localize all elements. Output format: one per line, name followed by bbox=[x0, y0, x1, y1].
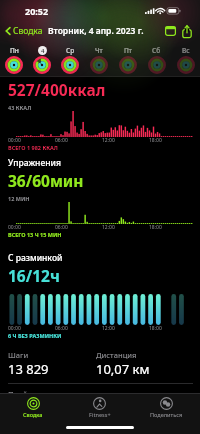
staticText: ВСЕГО 13 Ч 15 МИН bbox=[8, 231, 62, 238]
staticText: 16/12ч bbox=[8, 265, 60, 286]
staticText: Пт bbox=[124, 46, 132, 55]
staticText: Сводка bbox=[13, 25, 43, 37]
staticText: Перемещение bbox=[8, 66, 69, 78]
staticText: Шаги bbox=[8, 350, 29, 360]
button[interactable]: Сб bbox=[142, 40, 171, 74]
staticText: Fitness+ bbox=[89, 411, 111, 418]
button[interactable]: Ср bbox=[56, 40, 84, 74]
button[interactable]: Сводка bbox=[3, 23, 45, 39]
staticText: Вс bbox=[182, 46, 190, 55]
staticText: Поделиться bbox=[150, 411, 183, 418]
staticText: 12:00 bbox=[102, 224, 115, 231]
button[interactable]: Чт bbox=[84, 40, 113, 74]
staticText: Вторник, 4 апр. 2023 г. bbox=[48, 25, 144, 37]
staticText: Чт bbox=[95, 46, 103, 55]
staticText: 12:00 bbox=[102, 137, 115, 144]
button[interactable]: Пт bbox=[113, 40, 142, 74]
staticText: Пройдено пролетов bbox=[8, 389, 83, 399]
staticText: 4 bbox=[41, 47, 45, 55]
button[interactable]: 4 bbox=[28, 40, 56, 74]
button[interactable]: Пн bbox=[0, 40, 28, 74]
staticText: 06:00 bbox=[55, 224, 68, 231]
staticText: 00:00 bbox=[8, 137, 21, 144]
staticText: Дистанция bbox=[96, 350, 137, 360]
staticText: 18:00 bbox=[149, 325, 162, 332]
staticText: 6 Ч БЕЗ РАЗМИНКИ bbox=[8, 332, 62, 339]
staticText: 12 МИН bbox=[8, 195, 30, 202]
button[interactable]: Вс bbox=[171, 40, 200, 74]
staticText: Пн bbox=[10, 46, 19, 55]
staticText: 18:00 bbox=[149, 224, 162, 231]
staticText: С разминкой bbox=[8, 252, 63, 264]
staticText: 00:00 bbox=[8, 224, 21, 231]
staticText: 527/400ккал bbox=[8, 79, 106, 100]
staticText: 06:00 bbox=[55, 137, 68, 144]
button[interactable]: Сводка bbox=[0, 394, 66, 421]
staticText: Упражнения bbox=[8, 157, 61, 169]
staticText: 12:00 bbox=[102, 325, 115, 332]
staticText: 00:00 bbox=[8, 325, 21, 332]
staticText: 06:00 bbox=[55, 325, 68, 332]
staticText: 43 ККАЛ bbox=[8, 104, 32, 111]
staticText: 36/60мин bbox=[8, 170, 84, 191]
staticText: 10,07 км bbox=[96, 360, 150, 378]
staticText: Ср bbox=[66, 46, 75, 55]
button[interactable]: Calendar bbox=[162, 23, 178, 39]
button[interactable]: Поделиться bbox=[133, 394, 200, 421]
staticText: 18:00 bbox=[149, 137, 162, 144]
staticText: ВСЕГО 1 982 ККАЛ bbox=[8, 144, 58, 151]
staticText: 13 829 bbox=[8, 360, 49, 378]
button[interactable]: Fitness+ bbox=[66, 394, 133, 421]
staticText: 20:52 bbox=[25, 5, 49, 17]
staticText: Сб bbox=[152, 46, 161, 55]
button[interactable]: Share bbox=[179, 23, 195, 39]
staticText: Сводка bbox=[23, 411, 43, 418]
